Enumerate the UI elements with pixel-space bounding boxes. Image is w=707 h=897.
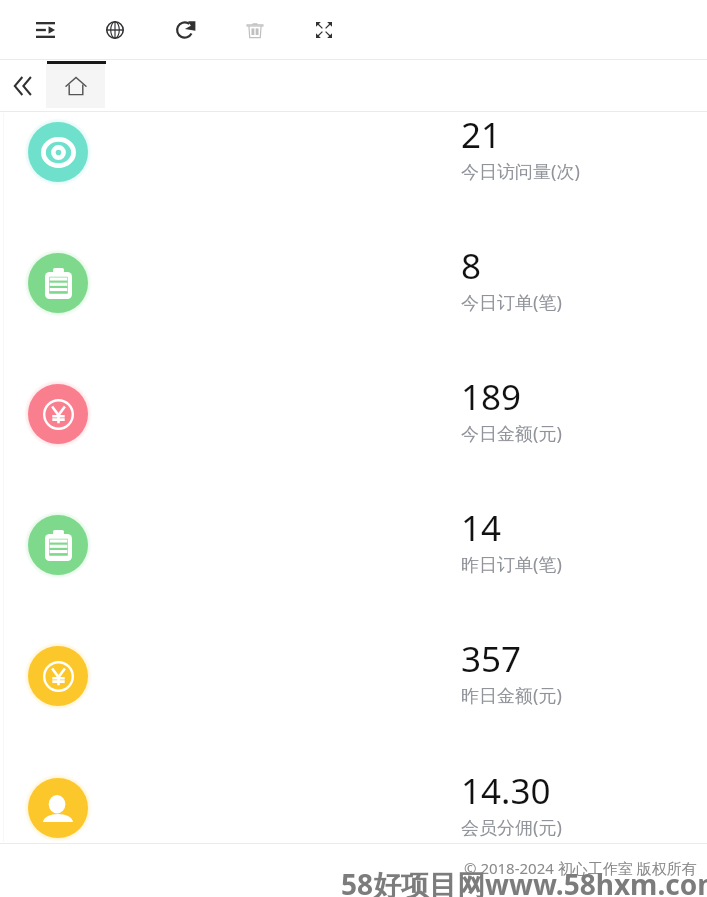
staticText: © 2018-2024 初心工作室 版权所有 xyxy=(464,858,697,878)
button[interactable]: Refresh xyxy=(164,9,206,51)
staticText: 14 xyxy=(461,504,502,552)
staticText: 189 xyxy=(461,373,522,421)
button[interactable]: 14 xyxy=(0,480,707,611)
staticText: 今日访问量(次) xyxy=(461,159,580,184)
staticText: 14.30 xyxy=(461,767,551,815)
staticText: 8 xyxy=(461,242,482,290)
button[interactable]: Language xyxy=(94,9,136,51)
staticText: 会员分佣(元) xyxy=(461,815,562,840)
button[interactable]: Expand menu xyxy=(24,9,66,51)
staticText: 昨日订单(笔) xyxy=(461,552,562,577)
button[interactable]: 8 xyxy=(0,218,707,349)
button[interactable]: Fullscreen xyxy=(303,9,345,51)
button[interactable]: Collapse tabs xyxy=(5,67,41,105)
staticText: 昨日金额(元) xyxy=(461,683,562,708)
staticText: 58好项目网www.58hxm.com xyxy=(341,865,707,897)
button[interactable]: 357 xyxy=(0,611,707,742)
staticText: 357 xyxy=(461,635,522,683)
staticText: 今日金额(元) xyxy=(461,421,562,446)
button[interactable]: Clear cache xyxy=(234,9,276,51)
button[interactable]: 189 xyxy=(0,349,707,480)
staticText: 21 xyxy=(461,111,502,159)
button[interactable]: Home tab xyxy=(46,64,105,108)
staticText: 今日订单(笔) xyxy=(461,290,562,315)
button[interactable]: 21 xyxy=(0,87,707,218)
button[interactable]: 14.30 xyxy=(0,743,707,874)
